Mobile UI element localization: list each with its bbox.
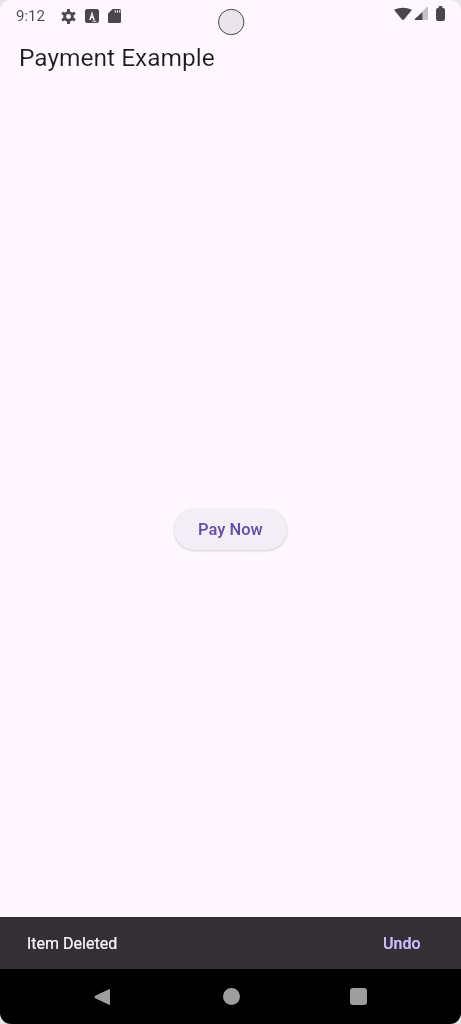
- button[interactable]: Recents: [327, 969, 389, 1024]
- button[interactable]: Undo: [375, 924, 429, 963]
- staticText: Payment Example: [19, 43, 215, 72]
- staticText: Item Deleted: [27, 934, 118, 953]
- staticText: 9:12: [16, 7, 45, 25]
- button[interactable]: Back: [71, 969, 133, 1024]
- button[interactable]: Home: [200, 969, 262, 1024]
- staticText: Undo: [383, 934, 421, 953]
- staticText: Pay Now: [198, 520, 263, 539]
- button[interactable]: Pay Now: [174, 509, 287, 550]
